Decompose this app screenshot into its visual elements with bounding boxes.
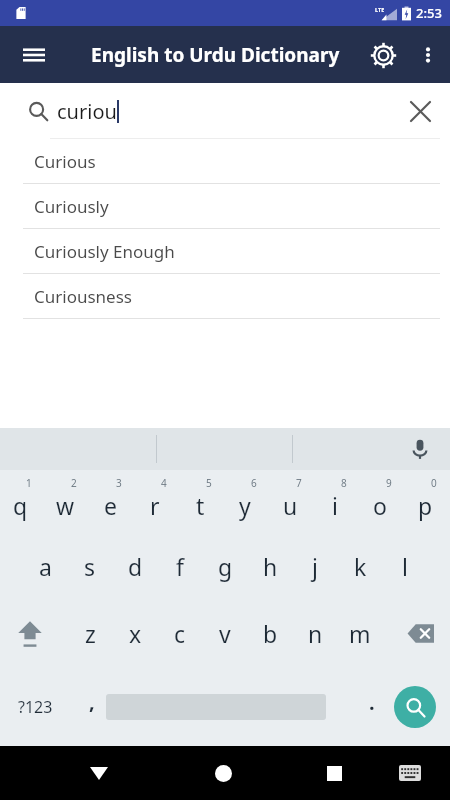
staticText: k: [354, 551, 367, 582]
button[interactable]: Backspace: [392, 599, 450, 667]
button[interactable]: More options: [406, 33, 450, 77]
staticText: n: [308, 618, 323, 649]
button[interactable]: Curiousness: [0, 274, 450, 319]
staticText: 5: [206, 476, 212, 490]
staticText: a: [39, 551, 52, 582]
button[interactable]: v: [203, 599, 247, 667]
staticText: 0: [431, 476, 437, 490]
staticText: Curiousness: [34, 285, 132, 308]
staticText: Curiously Enough: [34, 240, 175, 263]
button[interactable]: g: [203, 534, 247, 599]
button[interactable]: b: [248, 599, 292, 667]
staticText: ,: [89, 688, 95, 715]
staticText: curiou: [57, 98, 117, 125]
staticText: y: [239, 490, 251, 521]
staticText: English to Urdu Dictionary: [91, 42, 340, 68]
staticText: s: [84, 551, 96, 582]
button[interactable]: Curious: [0, 139, 450, 184]
staticText: e: [104, 490, 117, 521]
button[interactable]: ,: [72, 667, 112, 746]
staticText: Curious: [34, 150, 96, 173]
button[interactable]: 5: [178, 470, 222, 534]
button[interactable]: f: [158, 534, 202, 599]
button[interactable]: Clear query: [398, 89, 442, 133]
button[interactable]: 1: [0, 470, 42, 534]
staticText: q: [13, 490, 28, 521]
staticText: j: [312, 551, 318, 582]
staticText: 6: [251, 476, 257, 490]
staticText: .: [369, 689, 375, 716]
button[interactable]: n: [293, 599, 337, 667]
staticText: 8: [341, 476, 347, 490]
staticText: o: [373, 490, 387, 521]
staticText: p: [418, 490, 433, 521]
staticText: 3: [116, 476, 122, 490]
staticText: b: [263, 618, 278, 649]
button[interactable]: 7: [268, 470, 312, 534]
staticText: 7: [296, 476, 302, 490]
button[interactable]: 3: [88, 470, 132, 534]
staticText: w: [56, 490, 75, 521]
button[interactable]: 2: [43, 470, 87, 534]
button[interactable]: h: [248, 534, 292, 599]
staticText: LTE: [375, 6, 385, 13]
staticText: 4: [161, 476, 167, 490]
staticText: z: [85, 618, 96, 649]
staticText: u: [283, 490, 298, 521]
button[interactable]: 6: [223, 470, 267, 534]
button[interactable]: Settings: [360, 32, 406, 78]
button[interactable]: Search: [394, 686, 436, 728]
button[interactable]: Search: [18, 91, 58, 131]
staticText: r: [150, 490, 160, 521]
button[interactable]: m: [338, 599, 382, 667]
staticText: g: [218, 551, 233, 582]
button[interactable]: s: [68, 534, 112, 599]
staticText: m: [349, 618, 371, 649]
button[interactable]: Voice input: [400, 429, 440, 469]
staticText: h: [263, 551, 278, 582]
button[interactable]: a: [23, 534, 67, 599]
button[interactable]: l: [383, 534, 427, 599]
button[interactable]: Open navigation drawer: [10, 31, 58, 79]
button[interactable]: Shift: [0, 599, 60, 667]
staticText: d: [128, 551, 143, 582]
staticText: v: [219, 618, 231, 649]
button[interactable]: 8: [313, 470, 357, 534]
button[interactable]: Hide keyboard: [75, 746, 123, 800]
staticText: 1: [26, 476, 32, 490]
staticText: l: [402, 551, 408, 582]
staticText: x: [129, 618, 142, 649]
button[interactable]: Home: [199, 746, 247, 800]
staticText: t: [196, 490, 205, 521]
staticText: 9: [386, 476, 392, 490]
staticText: Curiously: [34, 195, 109, 218]
button[interactable]: Recent apps: [310, 746, 358, 800]
button[interactable]: j: [293, 534, 337, 599]
staticText: c: [174, 618, 186, 649]
button[interactable]: ?123: [5, 667, 65, 746]
button[interactable]: .: [354, 667, 390, 746]
button[interactable]: c: [158, 599, 202, 667]
staticText: ?123: [18, 696, 53, 718]
button[interactable]: 0: [403, 470, 447, 534]
staticText: 2:53: [416, 4, 442, 22]
button[interactable]: d: [113, 534, 157, 599]
button[interactable]: k: [338, 534, 382, 599]
button[interactable]: Curiously: [0, 184, 450, 229]
button[interactable]: x: [113, 599, 157, 667]
staticText: i: [332, 490, 338, 521]
button[interactable]: Switch keyboard: [388, 746, 432, 800]
button[interactable]: 9: [358, 470, 402, 534]
staticText: 2: [71, 476, 77, 490]
button[interactable]: z: [68, 599, 112, 667]
button[interactable]: 4: [133, 470, 177, 534]
staticText: f: [176, 551, 184, 582]
button[interactable]: Curiously Enough: [0, 229, 450, 274]
